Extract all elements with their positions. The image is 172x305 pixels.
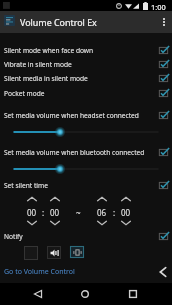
button[interactable]: Adjust 00: [115, 193, 137, 229]
staticText: 00: [121, 207, 131, 218]
button[interactable]: Go to Volume Control: [0, 267, 75, 277]
staticText: 1:00: [151, 2, 166, 12]
staticText: :: [113, 207, 116, 218]
button[interactable]: Vibrate in silent mode: [0, 57, 172, 71]
button[interactable]: Adjust 06: [91, 193, 113, 229]
staticText: Volume Control Ex: [20, 16, 97, 28]
button[interactable]: Previous page: [156, 265, 170, 279]
button[interactable]: Toggle setting: [156, 86, 170, 100]
button[interactable]: Home: [74, 283, 96, 305]
staticText: Set media volume when headset connected: [4, 111, 139, 120]
button[interactable]: Silent notification: [24, 246, 38, 260]
button[interactable]: Set silent time: [0, 178, 172, 192]
button[interactable]: Adjust 00: [44, 193, 66, 229]
button[interactable]: Vibrate notification: [70, 246, 84, 258]
button[interactable]: Toggle setting: [156, 108, 170, 122]
button[interactable]: More options: [156, 11, 172, 33]
button[interactable]: Set media volume when headset connected: [0, 108, 172, 122]
button[interactable]: Set media volume when bluetooth connecte…: [0, 145, 172, 159]
staticText: Vibrate in silent mode: [4, 60, 72, 69]
button[interactable]: Toggle setting: [156, 145, 170, 159]
button[interactable]: Silent mode when face down: [0, 43, 172, 57]
button[interactable]: Adjust 00: [21, 193, 43, 229]
staticText: 00: [50, 207, 60, 218]
button[interactable]: Toggle setting: [156, 229, 170, 243]
staticText: Silent media in silent mode: [4, 74, 88, 83]
staticText: Silent mode when face down: [4, 46, 94, 55]
button[interactable]: Notify: [0, 229, 172, 243]
staticText: 06: [97, 207, 107, 218]
button[interactable]: Toggle setting: [156, 43, 170, 57]
staticText: :: [42, 207, 45, 218]
staticText: Set silent time: [4, 181, 48, 190]
button[interactable]: Volume slider: [0, 163, 172, 175]
staticText: Pocket mode: [4, 89, 45, 98]
button[interactable]: Toggle setting: [156, 57, 170, 71]
button[interactable]: Back: [27, 283, 49, 305]
staticText: ~: [76, 207, 81, 218]
button[interactable]: Toggle setting: [156, 71, 170, 85]
button[interactable]: Toggle setting: [156, 178, 170, 192]
staticText: 00: [27, 207, 37, 218]
staticText: Set media volume when bluetooth connecte…: [4, 148, 145, 157]
button[interactable]: Recent apps: [122, 283, 144, 305]
button[interactable]: Pocket mode: [0, 86, 172, 100]
staticText: Notify: [4, 232, 23, 241]
button[interactable]: Sound notification: [47, 246, 61, 259]
button[interactable]: Silent media in silent mode: [0, 71, 172, 85]
button[interactable]: Volume slider: [0, 126, 172, 138]
